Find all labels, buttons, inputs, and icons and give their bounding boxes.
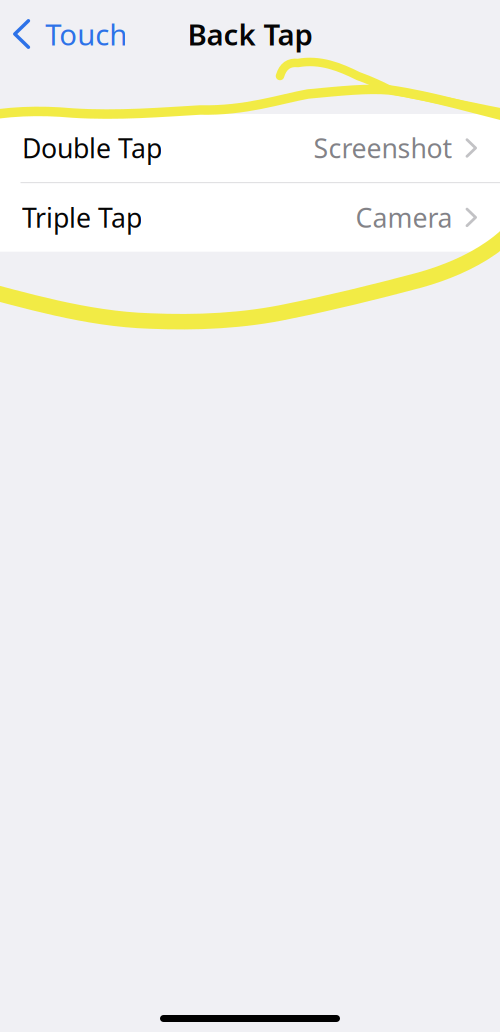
- staticText: Touch: [45, 14, 127, 53]
- button[interactable]: Double Tap: [0, 114, 500, 182]
- button[interactable]: Triple Tap: [0, 183, 500, 251]
- staticText: Back Tap: [187, 14, 312, 53]
- staticText: Triple Tap: [22, 200, 142, 235]
- staticText: Screenshot: [314, 130, 453, 166]
- staticText: Double Tap: [22, 130, 162, 166]
- staticText: Camera: [356, 200, 453, 235]
- button[interactable]: Touch: [0, 6, 127, 61]
